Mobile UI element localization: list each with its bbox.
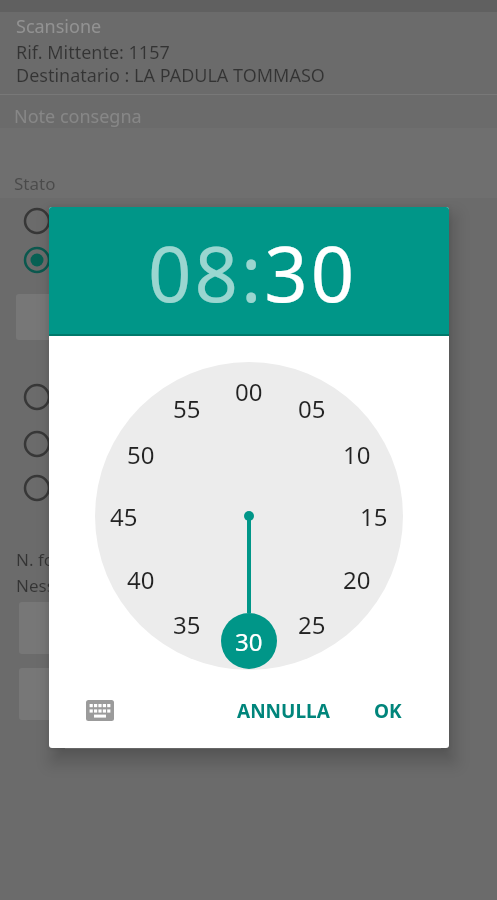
staticText: 05 bbox=[298, 392, 326, 425]
staticText: 20 bbox=[343, 563, 371, 596]
staticText: 08:30 bbox=[148, 221, 358, 325]
staticText: ANNULLA bbox=[237, 698, 330, 724]
button[interactable]: 25 bbox=[282, 604, 342, 644]
button[interactable]: 45 bbox=[94, 496, 154, 536]
staticText: 50 bbox=[127, 438, 155, 471]
staticText: Note consegna bbox=[14, 104, 142, 129]
staticText: 40 bbox=[127, 563, 155, 596]
button[interactable]: 05 bbox=[282, 388, 342, 428]
button[interactable]: 15 bbox=[344, 496, 404, 536]
staticText: Nessuna bbox=[16, 574, 86, 597]
staticText: Rif. Mittente: 1157 bbox=[16, 40, 170, 65]
staticText: 00 bbox=[235, 375, 263, 408]
staticText: 10 bbox=[343, 438, 371, 471]
button[interactable]: 20 bbox=[327, 559, 387, 599]
button[interactable]: 30 bbox=[219, 621, 279, 661]
staticText: Stato bbox=[14, 172, 56, 195]
staticText: 30 bbox=[235, 625, 263, 658]
staticText: 35 bbox=[173, 608, 201, 641]
staticText: 55 bbox=[173, 392, 201, 425]
staticText: OK bbox=[374, 698, 402, 724]
button[interactable]: ANNULLA bbox=[227, 687, 339, 735]
staticText: 25 bbox=[298, 608, 326, 641]
button[interactable]: 00 bbox=[219, 371, 279, 411]
button[interactable]: 55 bbox=[157, 388, 217, 428]
staticText: 15 bbox=[360, 500, 388, 533]
staticText: 45 bbox=[110, 500, 138, 533]
button[interactable]: 10 bbox=[327, 434, 387, 474]
button[interactable]: 40 bbox=[111, 559, 171, 599]
button[interactable]: OK bbox=[357, 687, 419, 735]
button[interactable] bbox=[86, 700, 114, 722]
staticText: Scansione bbox=[16, 14, 102, 39]
staticText: N. foto bbox=[16, 548, 71, 571]
button[interactable]: 50 bbox=[111, 434, 171, 474]
button[interactable]: 35 bbox=[157, 604, 217, 644]
staticText: Destinatario : LA PADULA TOMMASO bbox=[16, 63, 325, 88]
